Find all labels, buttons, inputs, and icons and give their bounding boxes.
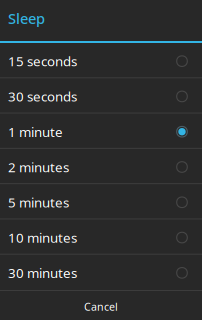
staticText: Cancel (84, 299, 118, 314)
staticText: 15 seconds (8, 52, 77, 70)
button[interactable]: 2 minutes (0, 149, 202, 184)
staticText: 30 seconds (8, 88, 77, 105)
button[interactable]: 30 minutes (0, 255, 202, 290)
button[interactable]: Cancel (0, 291, 202, 320)
staticText: 5 minutes (8, 193, 69, 211)
staticText: 2 minutes (8, 158, 69, 176)
staticText: 10 minutes (8, 229, 77, 246)
staticText: 1 minute (8, 123, 63, 141)
button[interactable]: 10 minutes (0, 219, 202, 255)
button[interactable]: 15 seconds (0, 43, 202, 78)
button[interactable]: 1 minute (0, 114, 202, 149)
staticText: Sleep (8, 8, 45, 28)
button[interactable]: 30 seconds (0, 78, 202, 114)
button[interactable]: 5 minutes (0, 184, 202, 219)
staticText: 30 minutes (8, 264, 77, 282)
